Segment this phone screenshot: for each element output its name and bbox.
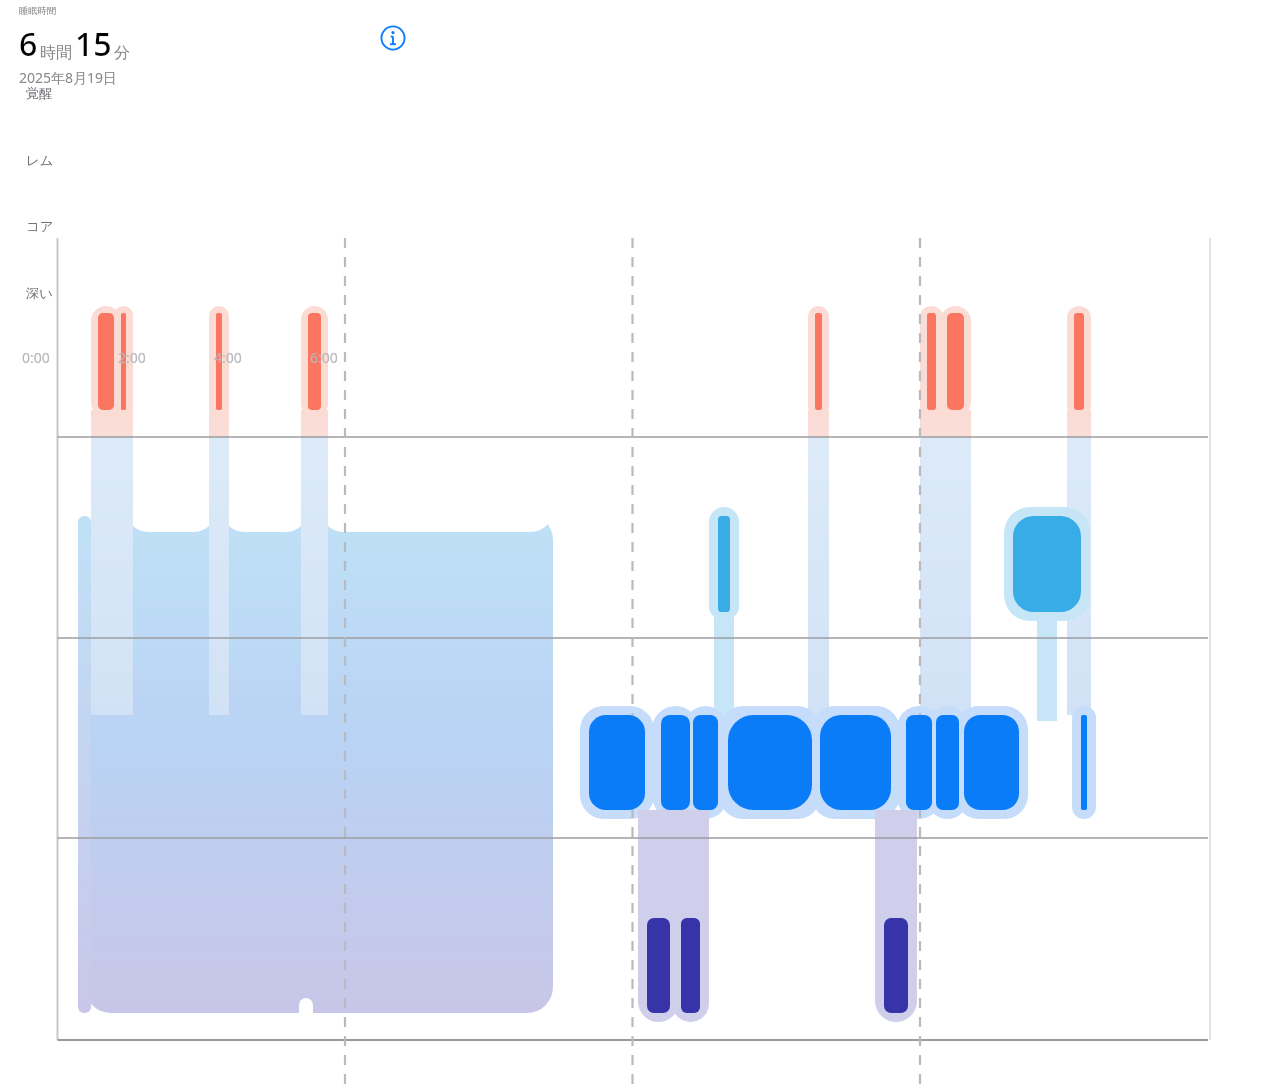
staticText: 分 <box>114 43 130 63</box>
staticText: 6:00 <box>310 348 338 367</box>
staticText: コア <box>26 218 54 235</box>
button[interactable]: 詳細情報 <box>380 25 406 51</box>
staticText: 睡眠時間 <box>19 5 57 17</box>
staticText: レム <box>26 152 54 169</box>
staticText: 2:00 <box>118 348 146 367</box>
staticText: 4:00 <box>214 348 242 367</box>
staticText: 2025年8月19日 <box>19 68 118 87</box>
staticText: 15 <box>75 22 112 66</box>
staticText: 覚醒 <box>26 85 53 102</box>
staticText: 0:00 <box>22 348 50 367</box>
staticText: 時間 <box>40 43 72 63</box>
staticText: 6 <box>19 22 38 66</box>
staticText: 深い <box>26 285 53 302</box>
